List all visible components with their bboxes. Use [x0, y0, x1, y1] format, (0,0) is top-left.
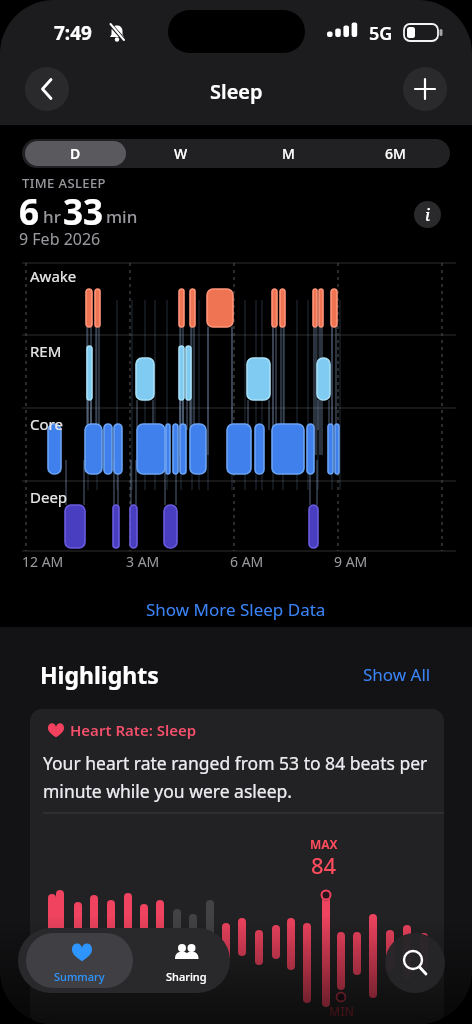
button[interactable]: M [236, 141, 340, 166]
staticText: 12 AM [22, 552, 64, 571]
staticText: TIME ASLEEP [22, 174, 106, 192]
staticText: W [174, 144, 188, 163]
staticText: D [70, 144, 81, 163]
staticText: Show More Sleep Data [146, 598, 326, 621]
staticText: Sharing [166, 969, 207, 984]
staticText: 9 AM [334, 552, 368, 571]
staticText: Your heart rate ranged from 53 to 84 bea… [43, 751, 428, 803]
staticText: 6 AM [230, 552, 264, 571]
staticText: hr [43, 205, 61, 228]
staticText: 6M [385, 144, 406, 163]
staticText: MIN [329, 1003, 355, 1019]
staticText: 9 Feb 2026 [19, 228, 101, 250]
staticText: Heart Rate: Sleep [70, 720, 197, 740]
button[interactable]: D [25, 141, 126, 166]
button[interactable]: Summary [26, 933, 133, 988]
button[interactable] [403, 67, 447, 111]
staticText: 33 [63, 188, 104, 236]
staticText: Show All [363, 663, 431, 686]
staticText: 84 [311, 850, 337, 880]
button[interactable]: Show All [363, 663, 431, 686]
staticText: REM [30, 341, 62, 361]
staticText: Summary [54, 969, 105, 984]
staticText: min [106, 205, 138, 228]
button[interactable] [25, 67, 69, 111]
staticText: M [282, 144, 295, 163]
button[interactable] [385, 933, 445, 993]
button[interactable]: i [414, 201, 441, 228]
staticText: Awake [30, 266, 77, 286]
staticText: Deep [30, 487, 68, 507]
button[interactable]: Heart Rate: Sleep [30, 709, 444, 1024]
staticText: 3 AM [126, 552, 160, 571]
staticText: i [425, 204, 431, 226]
button[interactable]: W [129, 141, 233, 166]
button[interactable]: Sharing [133, 933, 230, 988]
staticText: MAX [310, 836, 338, 852]
staticText: Core [30, 414, 63, 434]
staticText: 6 [19, 188, 40, 236]
staticText: 5G [369, 21, 393, 46]
button[interactable]: 6M [343, 141, 447, 166]
staticText: Highlights [40, 659, 159, 690]
staticText: 7:49 [54, 20, 92, 46]
staticText: Sleep [210, 78, 263, 105]
button[interactable]: Show More Sleep Data [146, 598, 326, 621]
